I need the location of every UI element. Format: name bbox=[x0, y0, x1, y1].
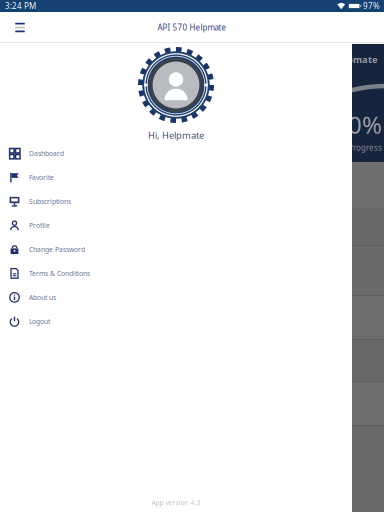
staticText: About us bbox=[29, 293, 56, 302]
button[interactable]: Change Password bbox=[0, 237, 352, 261]
button[interactable]: Open navigation menu bbox=[5, 12, 35, 43]
staticText: Profile bbox=[29, 221, 50, 230]
staticText: Dashboard bbox=[29, 149, 64, 158]
staticText: Overall Progress bbox=[320, 142, 382, 153]
button[interactable]: Logout bbox=[0, 309, 352, 333]
button[interactable]: Dashboard bbox=[0, 141, 352, 165]
staticText: Terms & Conditions bbox=[29, 269, 90, 278]
staticText: Logout bbox=[29, 317, 50, 326]
button[interactable]: Profile bbox=[0, 213, 352, 237]
button[interactable]: Subscriptions bbox=[0, 189, 352, 213]
staticText: Subscriptions bbox=[29, 197, 71, 206]
staticText: API 570 Helpmate bbox=[157, 22, 226, 33]
staticText: Favorite bbox=[29, 173, 54, 182]
staticText: 97% bbox=[363, 1, 380, 11]
button[interactable]: Favorite bbox=[0, 165, 352, 189]
button[interactable]: About us bbox=[0, 285, 352, 309]
staticText: 3:24 PM bbox=[5, 1, 36, 11]
staticText: App version 4.3 bbox=[151, 498, 200, 507]
staticText: Change Password bbox=[29, 245, 85, 254]
button[interactable]: Terms & Conditions bbox=[0, 261, 352, 285]
staticText: Hi, Helpmate bbox=[148, 129, 204, 141]
staticText: Hi, Helpmate bbox=[316, 53, 378, 66]
staticText: 50% bbox=[334, 108, 382, 140]
